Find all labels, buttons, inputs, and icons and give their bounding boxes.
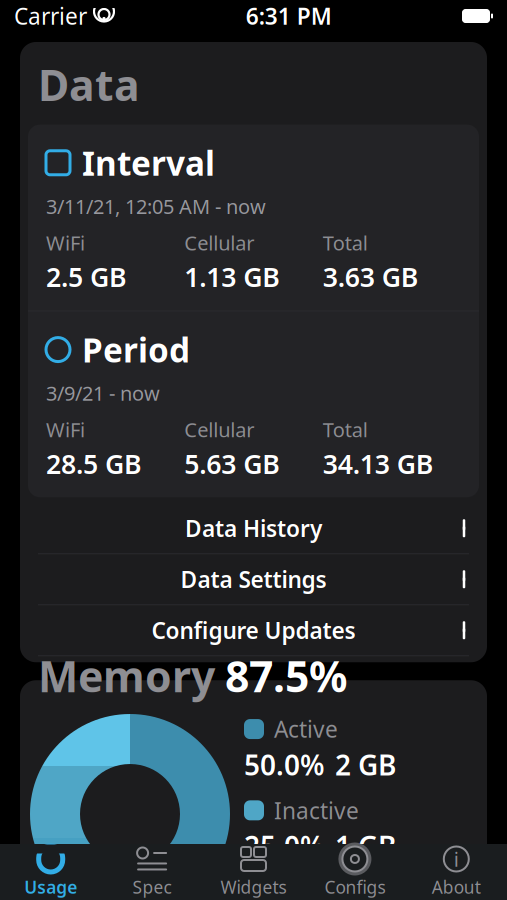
staticText: 25.0% [244, 827, 325, 865]
button[interactable]: i [406, 845, 507, 899]
staticText: Carrier [14, 1, 87, 31]
staticText: Total [323, 416, 368, 443]
staticText: 50.0% [244, 746, 325, 783]
staticText: 3/9/21 - now [46, 380, 160, 406]
button[interactable]: Interval [28, 125, 479, 310]
staticText: Data History [185, 513, 322, 543]
staticText: 34.13 GB [323, 446, 434, 481]
button[interactable]: Spec [101, 845, 203, 899]
staticText: Period [82, 327, 190, 372]
staticText: 2.5 GB [46, 259, 127, 294]
staticText: 3/11/21, 12:05 AM - now [46, 193, 266, 219]
button[interactable]: Usage [0, 845, 101, 899]
staticText: Widgets [220, 875, 286, 898]
staticText: Active [274, 714, 338, 744]
staticText: 5.63 GB [184, 446, 280, 481]
staticText: Interval [82, 141, 215, 185]
staticText: Wired [274, 877, 337, 900]
staticText: Cellular [184, 416, 254, 443]
staticText: About [432, 875, 481, 898]
staticText: Inactive [274, 795, 359, 825]
staticText: Spec [133, 875, 172, 898]
staticText: 6:31 PM [246, 1, 332, 31]
staticText: 2 GB [335, 746, 396, 783]
staticText: 3.63 GB [323, 259, 419, 294]
button[interactable]: Configs [304, 845, 406, 899]
staticText: Configure Updates [151, 615, 355, 645]
button[interactable]: Data Settings [20, 554, 487, 604]
staticText: Configs [324, 875, 385, 898]
staticText: Data Settings [180, 564, 326, 594]
button[interactable]: Data History [20, 503, 487, 553]
staticText: 28.5 GB [46, 446, 142, 481]
staticText: i [454, 846, 459, 872]
staticText: Usage [24, 875, 77, 898]
staticText: WiFi [46, 229, 85, 256]
staticText: WiFi [46, 416, 85, 443]
staticText: Total [323, 229, 368, 256]
staticText: 87.5% [225, 647, 347, 704]
staticText: Memory [38, 647, 215, 704]
button[interactable]: Widgets [203, 845, 304, 899]
staticText: Data [38, 56, 140, 113]
staticText: 1.13 GB [184, 259, 280, 294]
button[interactable]: Configure Updates [20, 605, 487, 655]
button[interactable]: Period [28, 311, 479, 497]
staticText: 1 GB [335, 827, 396, 865]
staticText: Cellular [184, 229, 254, 256]
